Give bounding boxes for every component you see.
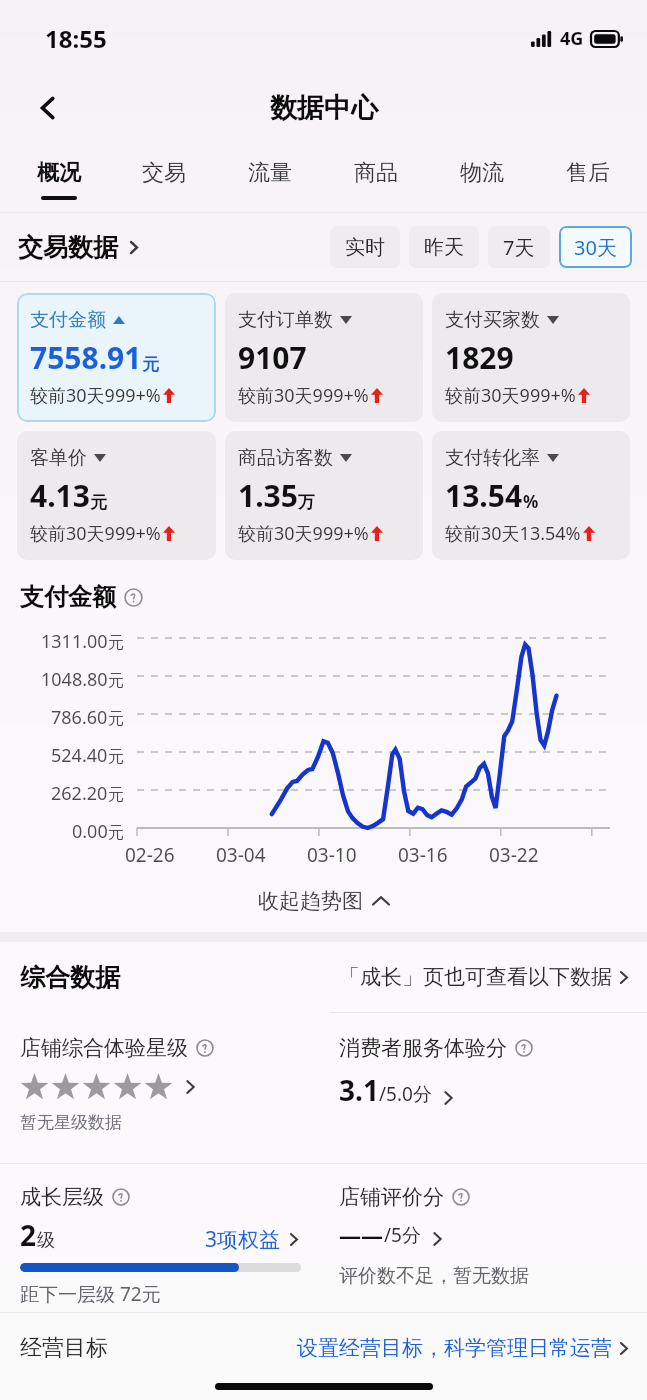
- button[interactable]: 物流: [429, 148, 535, 212]
- staticText: 元: [90, 492, 107, 513]
- staticText: 支付金额: [20, 582, 116, 612]
- staticText: 元: [108, 633, 124, 653]
- staticText: 1311.00: [41, 629, 108, 654]
- button[interactable]: 昨天: [409, 226, 479, 268]
- staticText: 元: [108, 823, 124, 843]
- staticText: 4.13: [30, 475, 90, 516]
- button[interactable]: 店铺评价分: [323, 1164, 647, 1312]
- button[interactable]: 售后: [535, 148, 641, 212]
- staticText: 03-10: [307, 842, 357, 868]
- button[interactable]: 交易数据: [18, 232, 145, 263]
- staticText: 较前30天999+%: [238, 521, 369, 546]
- button[interactable]: 成长层级: [0, 1164, 323, 1312]
- staticText: 03-16: [398, 842, 448, 868]
- button[interactable]: 实时: [330, 226, 400, 268]
- staticText: 暂无星级数据: [20, 1112, 122, 1133]
- staticText: 较前30天999+%: [238, 383, 369, 408]
- staticText: 1048.80: [41, 667, 108, 692]
- staticText: 较前30天999+%: [30, 383, 161, 408]
- staticText: 较前30天13.54%: [445, 521, 581, 546]
- staticText: 支付买家数: [445, 308, 540, 332]
- staticText: 支付转化率: [445, 446, 540, 470]
- staticText: 交易数据: [18, 232, 118, 263]
- staticText: 级: [37, 1229, 55, 1252]
- staticText: 元: [142, 354, 159, 375]
- staticText: 较前30天999+%: [30, 521, 161, 546]
- staticText: 03-04: [216, 842, 266, 868]
- staticText: 9107: [238, 337, 307, 378]
- staticText: ——: [339, 1220, 384, 1250]
- button[interactable]: 商品: [323, 148, 429, 212]
- button[interactable]: 经营目标: [0, 1313, 647, 1383]
- button[interactable]: Back: [22, 82, 74, 134]
- button[interactable]: 商品访客数: [225, 431, 423, 560]
- staticText: 元: [108, 709, 124, 729]
- staticText: 消费者服务体验分: [339, 1035, 507, 1061]
- button[interactable]: 店铺综合体验星级: [0, 1013, 323, 1163]
- staticText: 交易: [142, 159, 186, 187]
- staticText: 距下一层级 72元: [20, 1281, 161, 1307]
- staticText: 「成长」页也可查看以下数据: [339, 964, 612, 990]
- staticText: 万: [298, 492, 315, 513]
- staticText: 786.60: [51, 705, 108, 730]
- button[interactable]: 流量: [217, 148, 323, 212]
- staticText: 0.00: [72, 819, 108, 844]
- staticText: 收起趋势图: [258, 888, 363, 914]
- staticText: 1829: [445, 337, 514, 378]
- staticText: 较前30天999+%: [445, 383, 576, 408]
- button[interactable]: 支付买家数: [432, 293, 630, 422]
- staticText: 18:55: [45, 22, 107, 55]
- staticText: 概况: [37, 159, 81, 187]
- button[interactable]: 「成长」页也可查看以下数据: [339, 964, 631, 990]
- staticText: 商品访客数: [238, 446, 333, 470]
- staticText: 262.20: [51, 781, 108, 806]
- staticText: 02-26: [125, 842, 175, 868]
- staticText: 3.1: [339, 1071, 379, 1109]
- staticText: 店铺评价分: [339, 1184, 444, 1210]
- staticText: 30天: [574, 234, 617, 261]
- staticText: %: [523, 490, 539, 513]
- button[interactable]: 支付订单数: [225, 293, 423, 422]
- button[interactable]: 支付转化率: [432, 431, 630, 560]
- staticText: 昨天: [424, 235, 464, 260]
- staticText: 7天: [503, 234, 535, 261]
- button[interactable]: 客单价: [17, 431, 216, 560]
- staticText: 支付订单数: [238, 308, 333, 332]
- staticText: 设置经营目标，科学管理日常运营: [297, 1335, 612, 1361]
- button[interactable]: 收起趋势图: [258, 888, 389, 914]
- staticText: 成长层级: [20, 1184, 104, 1210]
- staticText: 3项权益: [205, 1225, 281, 1254]
- staticText: 售后: [566, 159, 610, 187]
- staticText: 数据中心: [270, 91, 378, 125]
- staticText: 03-22: [489, 842, 539, 868]
- staticText: 店铺综合体验星级: [20, 1035, 188, 1061]
- staticText: 经营目标: [20, 1334, 108, 1362]
- staticText: 商品: [354, 159, 398, 187]
- staticText: 综合数据: [20, 962, 120, 993]
- staticText: 7558.91: [30, 337, 142, 378]
- button[interactable]: 概况: [6, 148, 111, 212]
- staticText: 实时: [345, 235, 385, 260]
- staticText: /5分: [384, 1222, 421, 1248]
- staticText: 2: [20, 1216, 37, 1254]
- staticText: 物流: [460, 159, 504, 187]
- button[interactable]: 交易: [111, 148, 217, 212]
- staticText: 元: [108, 671, 124, 691]
- staticText: 4G: [560, 26, 584, 51]
- staticText: 1.35: [238, 475, 298, 516]
- staticText: 流量: [248, 159, 292, 187]
- staticText: 13.54: [445, 475, 523, 516]
- staticText: 评价数不足，暂无数据: [339, 1264, 529, 1288]
- staticText: /5.0分: [379, 1081, 432, 1107]
- staticText: 客单价: [30, 446, 87, 470]
- staticText: 元: [108, 747, 124, 767]
- button[interactable]: 消费者服务体验分: [323, 1013, 647, 1163]
- staticText: 支付金额: [30, 308, 106, 332]
- staticText: 元: [108, 785, 124, 805]
- button[interactable]: 支付金额: [17, 293, 216, 422]
- staticText: 524.40: [51, 743, 108, 768]
- button[interactable]: 7天: [488, 226, 550, 268]
- button[interactable]: 30天: [559, 226, 632, 268]
